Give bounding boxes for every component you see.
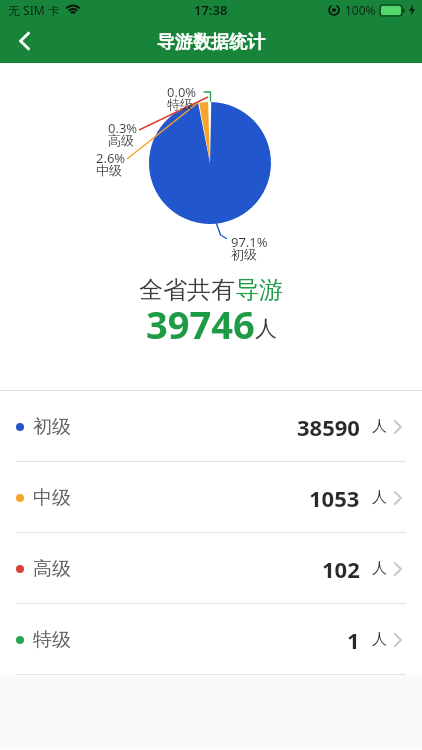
- button[interactable]: 特级: [0, 604, 422, 675]
- staticText: 初级: [231, 246, 257, 262]
- staticText: 1: [347, 625, 360, 655]
- staticText: 特级: [167, 96, 193, 112]
- staticText: 初级: [33, 415, 71, 439]
- staticText: 人: [372, 417, 387, 436]
- staticText: 2.6%: [96, 149, 126, 167]
- staticText: 无 SIM 卡: [8, 2, 60, 18]
- button[interactable]: 中级: [0, 462, 422, 533]
- staticText: 中级: [96, 162, 122, 178]
- staticText: 人: [255, 315, 277, 343]
- staticText: 0.0%: [167, 83, 197, 101]
- staticText: 导游数据统计: [157, 31, 265, 54]
- staticText: 102: [322, 554, 360, 584]
- staticText: 人: [372, 630, 387, 649]
- staticText: 39746: [146, 298, 255, 350]
- staticText: 高级: [33, 557, 71, 581]
- staticText: 全省共有导游: [139, 275, 283, 305]
- staticText: 38590: [297, 412, 360, 442]
- staticText: 人: [372, 488, 387, 507]
- staticText: 1053: [309, 483, 360, 513]
- button[interactable]: 高级: [0, 533, 422, 604]
- staticText: 特级: [33, 628, 71, 652]
- button[interactable]: [6, 24, 42, 58]
- staticText: 中级: [33, 486, 71, 510]
- staticText: 高级: [108, 132, 134, 148]
- button[interactable]: 初级: [0, 391, 422, 462]
- staticText: 97.1%: [231, 233, 268, 251]
- staticText: 人: [372, 559, 387, 578]
- staticText: 100%: [345, 2, 376, 18]
- staticText: 0.3%: [108, 119, 138, 137]
- staticText: 17:38: [194, 1, 228, 19]
